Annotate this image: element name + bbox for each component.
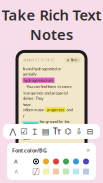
staticText: and	[65, 107, 72, 112]
button[interactable]: Background swatch	[61, 167, 71, 176]
staticText: trans fat products. Trans fats lowers	[22, 142, 71, 153]
button[interactable]: Color swatch	[31, 157, 41, 166]
button[interactable]: Background swatch	[71, 167, 81, 176]
button[interactable]: Background swatch	[51, 167, 61, 176]
staticText: ╱	[34, 168, 38, 175]
staticText: ⋮	[74, 41, 82, 50]
button[interactable]: ▤	[64, 57, 80, 63]
staticText: ⊟	[86, 127, 93, 136]
staticText: prepare	[23, 121, 37, 127]
button[interactable]: Back	[22, 41, 29, 49]
button[interactable]: Text size	[51, 127, 62, 136]
staticText: good cholesterol	[46, 154, 65, 164]
staticText: the ground for the formation of	[38, 119, 69, 129]
staticText: Take Rich Text	[1, 5, 101, 24]
button[interactable]: Checklist	[18, 127, 29, 136]
button[interactable]: More options	[75, 41, 80, 49]
staticText: Avoid hydrogenated or partially	[22, 66, 61, 76]
button[interactable]: Background swatch	[81, 167, 91, 176]
button[interactable]: Color swatch	[71, 157, 81, 166]
button[interactable]: Color swatch	[81, 157, 91, 166]
staticText: ☑	[20, 127, 27, 136]
staticText: ✕	[86, 147, 90, 153]
staticText: the amount of HDL or	[22, 154, 45, 164]
staticText: Notes	[30, 24, 73, 44]
staticText: ▤	[42, 127, 50, 136]
staticText: Updated 07.10 14:32	[22, 58, 54, 62]
button[interactable]: Color swatch	[61, 157, 71, 166]
button[interactable]: Background swatch	[41, 167, 51, 176]
staticText: A	[14, 168, 17, 175]
staticText: Font color/BG	[12, 147, 47, 154]
button[interactable]: Background color	[12, 167, 20, 175]
staticText: Study notes	[31, 37, 50, 54]
staticText: Tт	[53, 126, 61, 137]
button[interactable]: Color swatch	[51, 157, 61, 166]
button[interactable]: Table	[40, 127, 51, 136]
button[interactable]: Attach	[84, 127, 95, 136]
staticText: cancerous tissues. These are also	[22, 130, 72, 141]
staticText: have inflammatory	[22, 102, 45, 118]
button[interactable]: No background	[31, 167, 41, 176]
staticText: ⇩	[75, 127, 82, 136]
staticText: properties	[46, 107, 64, 112]
staticText: hydrogenated oils	[23, 77, 53, 83]
staticText: ⌬	[64, 127, 71, 136]
staticText: ⋀	[9, 127, 16, 136]
button[interactable]: Font color	[12, 157, 20, 165]
button[interactable]: Highlight color	[62, 127, 73, 136]
button[interactable]: Voice	[73, 127, 84, 136]
staticText: ⌶	[32, 126, 37, 137]
staticText: A	[14, 158, 18, 165]
staticText: ‹	[24, 39, 27, 52]
button[interactable]: Indent	[29, 127, 40, 136]
staticText: Work	[70, 58, 76, 62]
button[interactable]: Close	[85, 147, 91, 153]
button[interactable]: Undo style	[7, 127, 18, 136]
staticText: You can find them in some	[22, 84, 71, 89]
staticText: ▤	[66, 59, 69, 62]
button[interactable]: Color swatch	[41, 157, 51, 166]
staticText: margarines and prepared dishes. They	[22, 90, 67, 101]
